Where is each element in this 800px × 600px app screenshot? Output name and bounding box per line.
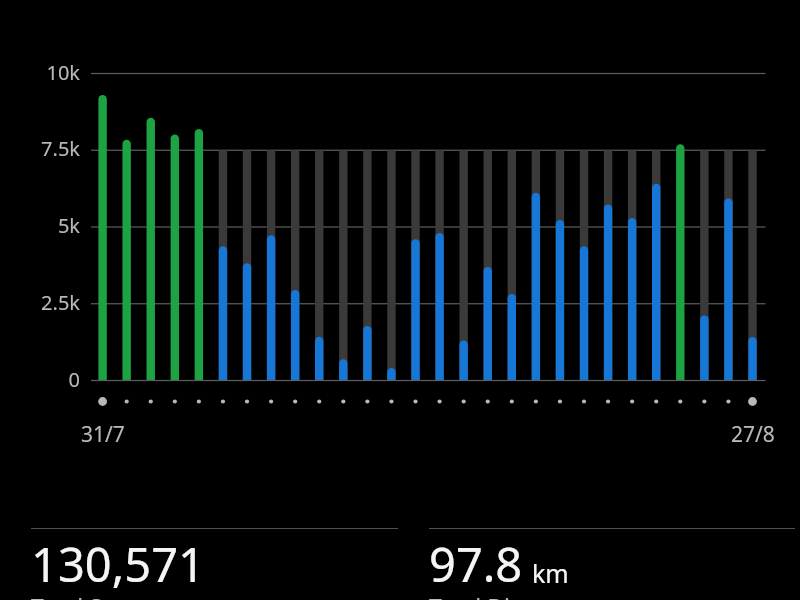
staticText: 31/7 [81, 420, 125, 449]
button[interactable]: 130,571 [31, 520, 398, 600]
staticText: 130,571 [31, 532, 205, 596]
staticText: 5k [57, 212, 80, 239]
button[interactable]: 97.8 [429, 520, 795, 600]
staticText: Total Steps [31, 591, 149, 600]
staticText: Total Distance [429, 591, 581, 600]
staticText: 97.8 [429, 532, 523, 596]
button[interactable]: Daily step count chart, 31/7 to 27/8 [0, 60, 800, 415]
staticText: 10k [46, 59, 80, 86]
staticText: 27/8 [731, 420, 775, 449]
staticText: 2.5k [41, 289, 80, 316]
staticText: km [532, 556, 569, 590]
staticText: 7.5k [41, 135, 80, 162]
staticText: 0 [68, 366, 80, 393]
